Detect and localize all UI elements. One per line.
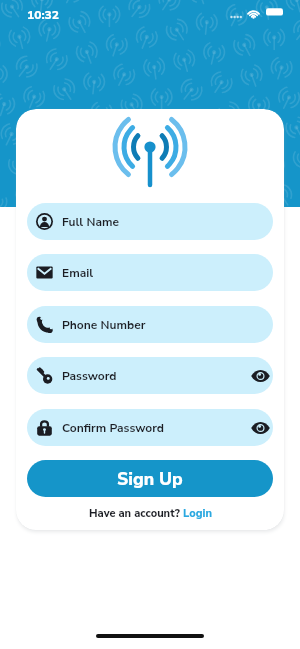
staticText: Email — [62, 265, 94, 281]
staticText: Sign Up — [117, 467, 183, 491]
button[interactable]: Login — [183, 506, 212, 521]
staticText: Confirm Password — [62, 420, 165, 436]
staticText: 10:32 — [27, 7, 59, 23]
button[interactable]: Confirm Password — [27, 409, 273, 446]
button[interactable]: Full Name — [27, 203, 273, 240]
staticText: Full Name — [62, 214, 120, 230]
staticText: Have an account? — [89, 506, 183, 521]
button[interactable]: Phone Number — [27, 306, 273, 343]
button[interactable]: Show password — [247, 357, 273, 394]
button[interactable]: Password — [27, 357, 273, 394]
staticText: Password — [62, 368, 117, 384]
staticText: Login — [183, 506, 212, 521]
button[interactable]: Show password — [247, 409, 273, 446]
staticText: Phone Number — [62, 317, 146, 333]
button[interactable]: Sign Up — [27, 460, 273, 497]
button[interactable]: Email — [27, 254, 273, 291]
